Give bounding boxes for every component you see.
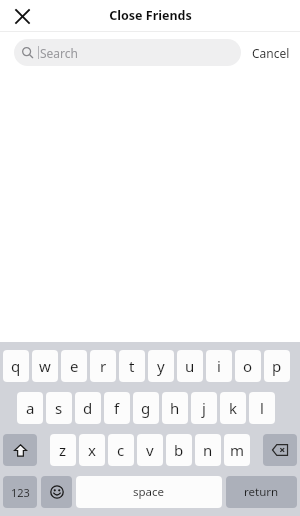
button[interactable]: u xyxy=(177,350,203,382)
button[interactable]: x xyxy=(79,434,105,466)
staticText: d xyxy=(83,398,93,418)
button[interactable]: g xyxy=(133,392,159,424)
button[interactable]: l xyxy=(249,392,275,424)
button[interactable]: Shift xyxy=(3,434,37,466)
staticText: s xyxy=(55,398,63,418)
staticText: Cancel xyxy=(252,45,290,61)
staticText: g xyxy=(141,398,151,418)
button[interactable]: r xyxy=(90,350,116,382)
button[interactable]: Close xyxy=(10,4,34,28)
button[interactable]: h xyxy=(162,392,188,424)
button[interactable]: Backspace xyxy=(263,434,297,466)
button[interactable]: o xyxy=(235,350,261,382)
staticText: p xyxy=(272,356,282,376)
staticText: u xyxy=(185,356,195,376)
staticText: t xyxy=(129,356,135,376)
staticText: v xyxy=(146,440,154,460)
button[interactable]: b xyxy=(166,434,192,466)
staticText: f xyxy=(114,398,120,418)
staticText: l xyxy=(260,398,264,418)
button[interactable]: y xyxy=(148,350,174,382)
button[interactable]: t xyxy=(119,350,145,382)
staticText: Close Friends xyxy=(109,7,192,24)
staticText: a xyxy=(26,398,35,418)
staticText: 123 xyxy=(11,485,30,500)
staticText: space xyxy=(133,484,165,500)
staticText: return xyxy=(244,484,279,500)
staticText: q xyxy=(11,356,21,376)
staticText: e xyxy=(70,356,79,376)
button[interactable]: 123 xyxy=(3,476,37,508)
button[interactable]: c xyxy=(108,434,134,466)
staticText: w xyxy=(39,356,51,376)
button[interactable]: p xyxy=(264,350,290,382)
button[interactable]: z xyxy=(50,434,76,466)
staticText: b xyxy=(174,440,184,460)
button[interactable]: return xyxy=(226,476,297,508)
staticText: c xyxy=(117,440,125,460)
button[interactable]: Search xyxy=(14,39,241,66)
staticText: n xyxy=(203,440,213,460)
button[interactable]: m xyxy=(224,434,250,466)
staticText: y xyxy=(157,356,165,376)
button[interactable]: q xyxy=(3,350,29,382)
button[interactable]: a xyxy=(17,392,43,424)
button[interactable]: w xyxy=(32,350,58,382)
button[interactable]: f xyxy=(104,392,130,424)
button[interactable]: d xyxy=(75,392,101,424)
button[interactable]: space xyxy=(76,476,222,508)
button[interactable]: j xyxy=(191,392,217,424)
staticText: x xyxy=(88,440,96,460)
button[interactable]: e xyxy=(61,350,87,382)
button[interactable]: Emoji xyxy=(41,476,72,508)
staticText: r xyxy=(100,356,107,376)
button[interactable]: i xyxy=(206,350,232,382)
staticText: j xyxy=(202,398,206,418)
staticText: m xyxy=(230,440,245,460)
button[interactable]: v xyxy=(137,434,163,466)
button[interactable]: s xyxy=(46,392,72,424)
button[interactable]: Cancel xyxy=(241,32,300,73)
staticText: i xyxy=(217,356,221,376)
button[interactable]: k xyxy=(220,392,246,424)
staticText: z xyxy=(59,440,67,460)
staticText: k xyxy=(229,398,238,418)
staticText: Search xyxy=(40,45,78,61)
staticText: h xyxy=(170,398,180,418)
button[interactable]: n xyxy=(195,434,221,466)
staticText: o xyxy=(243,356,253,376)
